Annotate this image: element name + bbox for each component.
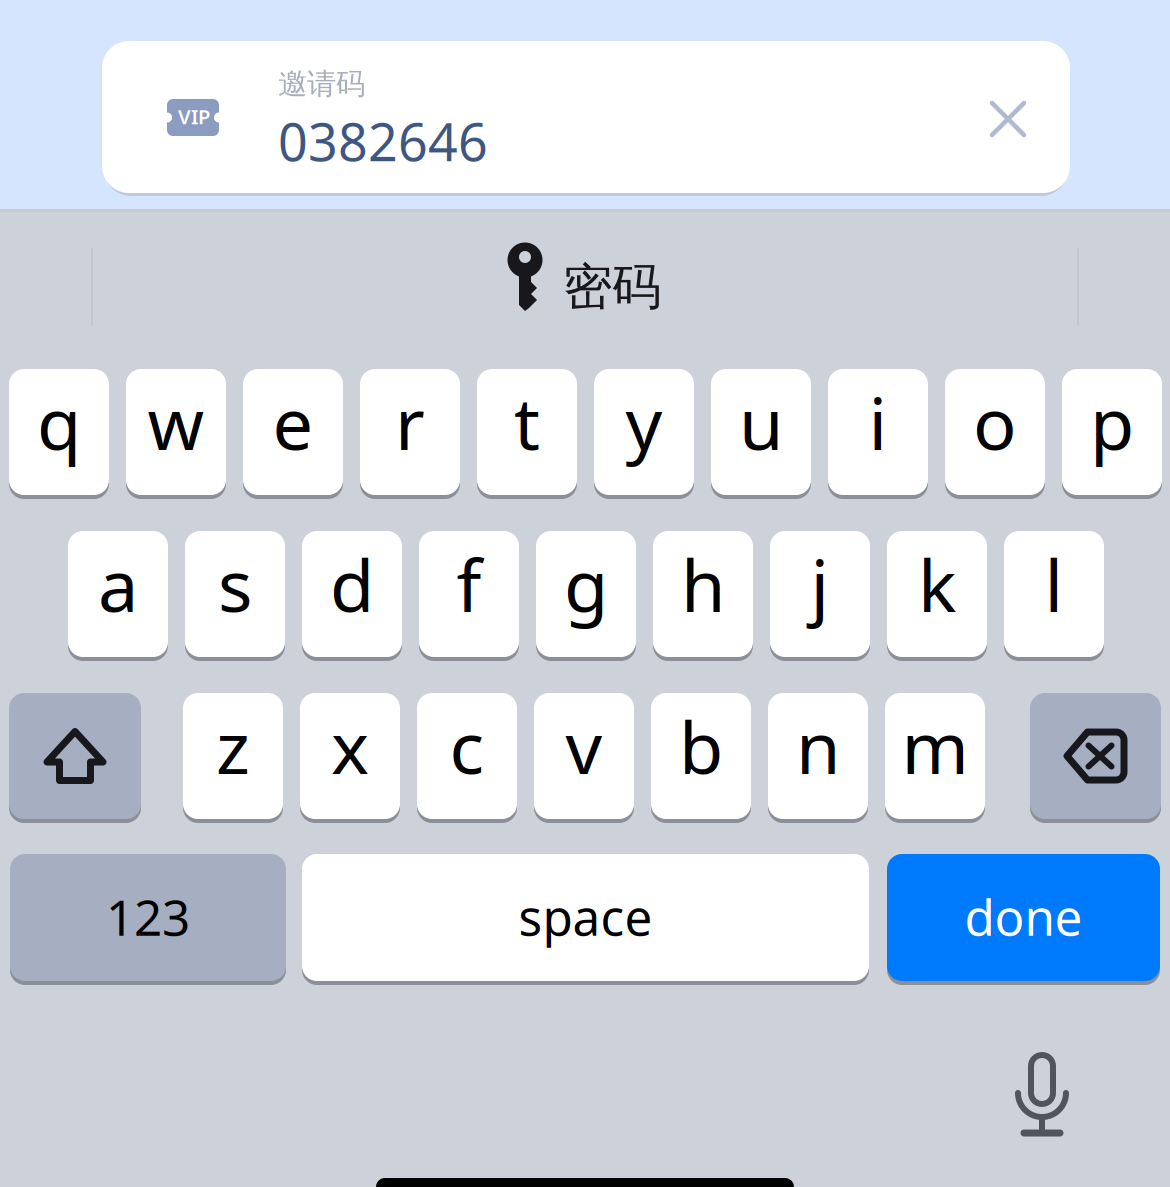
staticText: w xyxy=(147,374,204,470)
staticText: 0382646 xyxy=(278,106,488,176)
staticText: t xyxy=(514,374,540,470)
staticText: n xyxy=(796,698,840,794)
button[interactable]: s xyxy=(185,531,285,657)
button[interactable]: l xyxy=(1004,531,1104,657)
staticText: 密码 xyxy=(563,257,661,317)
staticText: u xyxy=(739,374,783,470)
staticText: e xyxy=(272,374,313,470)
staticText: p xyxy=(1090,374,1134,470)
staticText: l xyxy=(1044,536,1063,632)
button[interactable]: y xyxy=(594,369,694,495)
staticText: k xyxy=(918,536,956,632)
staticText: m xyxy=(901,698,968,794)
staticText: j xyxy=(810,536,829,632)
button[interactable]: t xyxy=(477,369,577,495)
staticText: y xyxy=(625,374,662,470)
button[interactable]: j xyxy=(770,531,870,657)
button[interactable]: done xyxy=(887,854,1160,981)
staticText: x xyxy=(331,698,369,794)
button[interactable]: a xyxy=(68,531,168,657)
button[interactable]: Shift xyxy=(9,693,141,819)
button[interactable]: e xyxy=(243,369,343,495)
staticText: c xyxy=(449,698,484,794)
button[interactable]: b xyxy=(651,693,751,819)
button[interactable]: h xyxy=(653,531,753,657)
button[interactable]: m xyxy=(885,693,985,819)
button[interactable]: c xyxy=(417,693,517,819)
button[interactable]: v xyxy=(534,693,634,819)
staticText: h xyxy=(681,536,725,632)
button[interactable]: x xyxy=(300,693,400,819)
staticText: f xyxy=(456,536,481,632)
staticText: q xyxy=(37,374,81,470)
button[interactable]: 123 xyxy=(10,854,286,981)
staticText: i xyxy=(868,374,887,470)
staticText: space xyxy=(518,884,652,949)
button[interactable]: q xyxy=(9,369,109,495)
staticText: d xyxy=(330,536,374,632)
button[interactable]: 密码 xyxy=(93,240,1077,334)
button[interactable]: VIP xyxy=(102,41,1070,193)
button[interactable]: f xyxy=(419,531,519,657)
button[interactable]: n xyxy=(768,693,868,819)
staticText: r xyxy=(395,374,425,470)
button[interactable]: d xyxy=(302,531,402,657)
staticText: 123 xyxy=(106,884,190,949)
button[interactable]: p xyxy=(1062,369,1162,495)
button[interactable]: r xyxy=(360,369,460,495)
staticText: z xyxy=(216,698,250,794)
staticText: o xyxy=(973,374,1017,470)
button[interactable]: Dictation xyxy=(1015,1052,1069,1138)
button[interactable]: i xyxy=(828,369,928,495)
button[interactable]: u xyxy=(711,369,811,495)
staticText: s xyxy=(218,536,252,632)
button[interactable]: k xyxy=(887,531,987,657)
staticText: VIP xyxy=(178,103,210,130)
staticText: done xyxy=(964,884,1082,949)
button[interactable]: w xyxy=(126,369,226,495)
staticText: 邀请码 xyxy=(278,66,365,102)
button[interactable]: space xyxy=(302,854,869,981)
staticText: v xyxy=(565,698,602,794)
button[interactable]: o xyxy=(945,369,1045,495)
staticText: b xyxy=(679,698,723,794)
staticText: g xyxy=(564,536,608,632)
button[interactable]: z xyxy=(183,693,283,819)
button[interactable]: g xyxy=(536,531,636,657)
button[interactable]: Close xyxy=(968,79,1048,159)
staticText: a xyxy=(98,536,138,632)
button[interactable]: Delete xyxy=(1030,693,1161,819)
